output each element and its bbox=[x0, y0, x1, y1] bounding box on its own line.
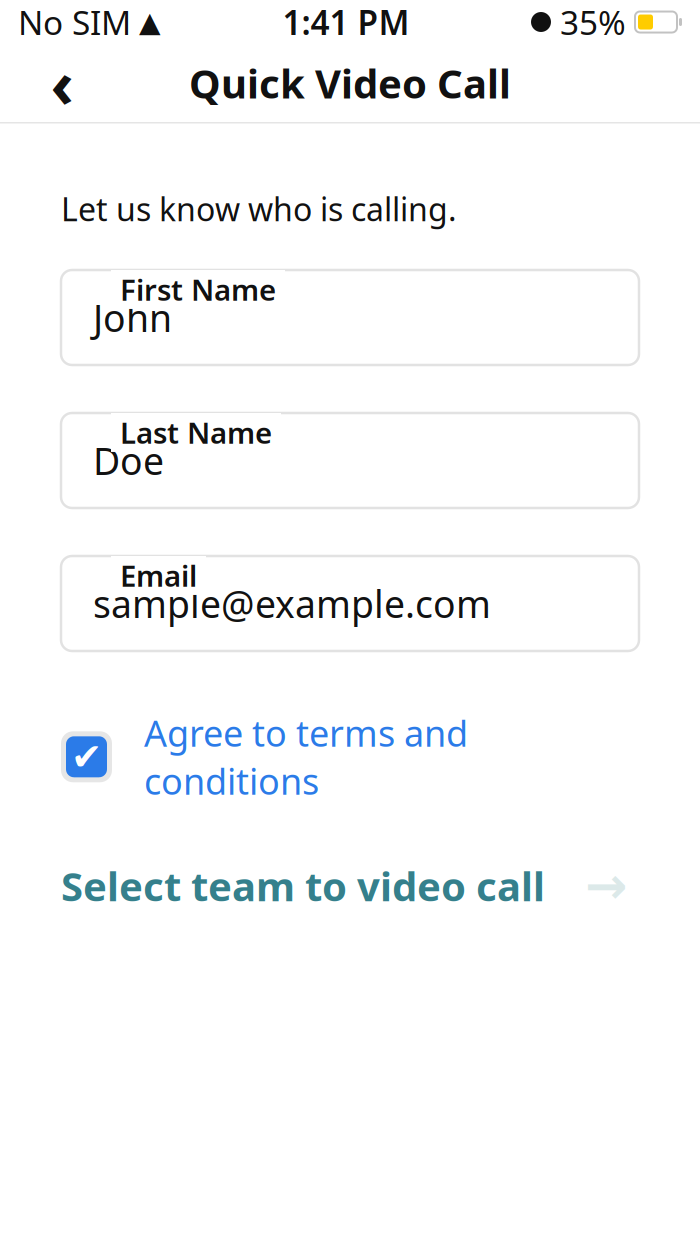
button[interactable]: Select team to video call bbox=[61, 855, 639, 917]
staticText: No SIM bbox=[18, 0, 131, 44]
button[interactable]: Back bbox=[32, 53, 92, 113]
staticText: Last Name bbox=[120, 413, 272, 452]
staticText: 1:41 PM bbox=[282, 0, 409, 44]
button[interactable]: ✔ bbox=[61, 709, 639, 805]
staticText: Agree to terms and conditions bbox=[144, 709, 468, 805]
staticText: ‹ bbox=[50, 40, 73, 125]
staticText: Select team to video call bbox=[61, 859, 545, 912]
staticText: 35% bbox=[560, 0, 626, 44]
staticText: First Name bbox=[120, 270, 276, 309]
staticText: Email bbox=[120, 556, 197, 595]
staticText: Doe bbox=[93, 436, 164, 485]
staticText: ▲ bbox=[139, 6, 161, 38]
staticText: Quick Video Call bbox=[189, 56, 511, 109]
staticText: ✔ bbox=[71, 736, 102, 778]
staticText: → bbox=[585, 857, 627, 914]
staticText: Let us know who is calling. bbox=[61, 187, 457, 230]
staticText: sample@example.com bbox=[93, 579, 491, 628]
staticText: John bbox=[93, 293, 172, 342]
